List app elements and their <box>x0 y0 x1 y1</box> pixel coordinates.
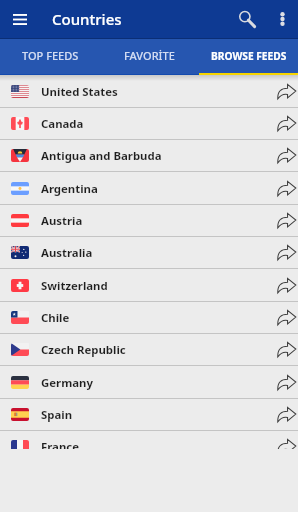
staticText: Chile <box>41 310 70 326</box>
button[interactable]: BROWSE FEEDS <box>199 38 298 75</box>
button[interactable]: Czech Republic <box>0 334 298 365</box>
button[interactable]: Share Antigua and Barbuda <box>274 140 298 171</box>
button[interactable]: Canada <box>0 108 298 139</box>
button[interactable]: Share Canada <box>274 108 298 139</box>
staticText: Argentina <box>41 181 98 197</box>
button[interactable]: Argentina <box>0 173 298 204</box>
button[interactable]: Share Czech Republic <box>274 334 298 365</box>
button[interactable]: Australia <box>0 237 298 268</box>
staticText: Czech Republic <box>41 342 126 358</box>
button[interactable]: France <box>0 431 298 449</box>
button[interactable]: Share Argentina <box>274 173 298 204</box>
button[interactable]: Spain <box>0 399 298 430</box>
button[interactable]: Search <box>227 0 267 38</box>
button[interactable]: Switzerland <box>0 270 298 301</box>
staticText: Switzerland <box>41 278 108 294</box>
staticText: Australia <box>41 245 93 261</box>
button[interactable]: Share Switzerland <box>274 270 298 301</box>
staticText: Canada <box>41 116 84 132</box>
button[interactable]: United States <box>0 76 298 107</box>
button[interactable]: Share Austria <box>274 205 298 236</box>
button[interactable]: TOP FEEDS <box>0 38 100 75</box>
button[interactable]: Share Spain <box>274 399 298 430</box>
button[interactable]: FAVORİTE <box>100 38 199 75</box>
button[interactable]: Antigua and Barbuda <box>0 140 298 171</box>
button[interactable]: Share Germany <box>274 367 298 398</box>
button[interactable]: Chile <box>0 302 298 333</box>
staticText: Antigua and Barbuda <box>41 148 162 164</box>
staticText: BROWSE FEEDS <box>211 49 287 63</box>
button[interactable]: More options <box>267 0 298 38</box>
staticText: FAVORİTE <box>124 48 175 63</box>
staticText: Austria <box>41 213 83 229</box>
staticText: Countries <box>52 9 122 29</box>
button[interactable]: Germany <box>0 367 298 398</box>
staticText: TOP FEEDS <box>22 48 79 63</box>
button[interactable]: Open navigation menu <box>0 0 40 38</box>
staticText: United States <box>41 84 118 100</box>
staticText: Germany <box>41 375 93 391</box>
button[interactable]: Share France <box>274 431 298 449</box>
button[interactable]: Austria <box>0 205 298 236</box>
button[interactable]: Share Chile <box>274 302 298 333</box>
staticText: France <box>41 439 80 449</box>
staticText: Spain <box>41 407 73 423</box>
button[interactable]: Share Australia <box>274 237 298 268</box>
button[interactable]: Share United States <box>274 76 298 107</box>
